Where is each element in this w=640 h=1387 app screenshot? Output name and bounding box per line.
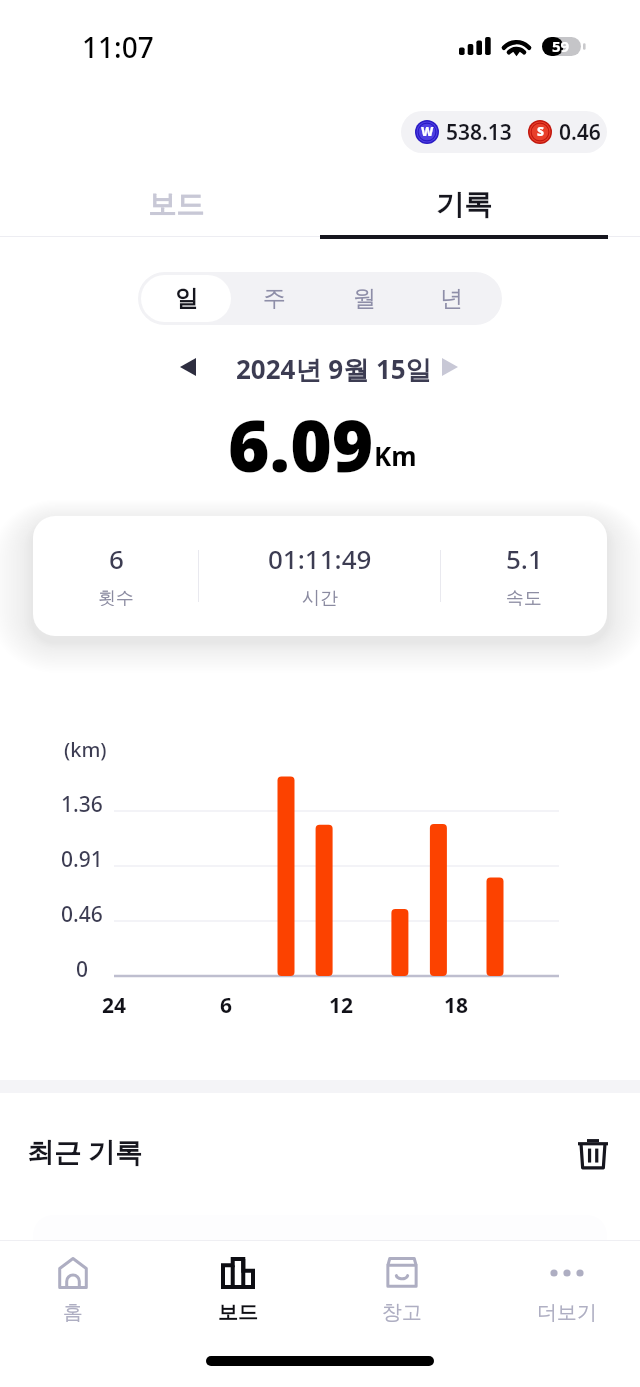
staticText: 5.1 [506, 541, 543, 576]
staticText: 0 [76, 955, 89, 984]
button[interactable]: 보드 [178, 1248, 298, 1338]
staticText: 12 [329, 991, 354, 1020]
staticText: 홈 [63, 1300, 83, 1325]
staticText: 창고 [382, 1300, 422, 1325]
staticText: W [421, 123, 434, 139]
staticText: 월 [353, 284, 376, 313]
button[interactable]: 년 [406, 272, 496, 325]
staticText: 59 [552, 36, 570, 55]
staticText: 년 [440, 284, 463, 313]
staticText: 보드 [218, 1300, 258, 1325]
button[interactable]: W [401, 111, 607, 153]
staticText: 18 [444, 991, 469, 1020]
staticText: 6 [220, 991, 233, 1020]
staticText: 더보기 [537, 1300, 597, 1325]
button[interactable]: 월 [319, 272, 409, 325]
staticText: 538.13 [446, 118, 512, 147]
staticText: 횟수 [98, 587, 134, 610]
staticText: (km) [64, 736, 107, 763]
staticText: Km [374, 438, 417, 473]
button[interactable]: Delete records [567, 1126, 619, 1178]
staticText: 시간 [302, 587, 338, 610]
staticText: 6.09 [228, 396, 374, 493]
staticText: 1.36 [61, 790, 103, 819]
staticText: 0.46 [559, 118, 601, 147]
button[interactable]: Previous day [164, 343, 212, 391]
staticText: 보드 [148, 187, 204, 222]
staticText: 최근 기록 [27, 1133, 143, 1170]
staticText: 01:11:49 [268, 541, 372, 576]
staticText: 주 [263, 284, 286, 313]
button[interactable]: 보드 [32, 172, 320, 236]
button[interactable]: 더보기 [507, 1248, 627, 1338]
button[interactable]: Next day [426, 343, 474, 391]
staticText: 속도 [506, 587, 542, 610]
staticText: S [537, 123, 544, 139]
button[interactable]: 창고 [342, 1248, 462, 1338]
staticText: 일 [175, 284, 198, 313]
button[interactable]: 주 [229, 272, 319, 325]
staticText: 11:07 [82, 28, 154, 66]
staticText: 기록 [436, 187, 492, 222]
staticText: 2024년 9월 15일 [236, 351, 432, 387]
button[interactable]: 홈 [13, 1248, 133, 1338]
button[interactable]: 일 [141, 272, 231, 325]
staticText: 0.91 [61, 845, 103, 874]
staticText: 0.46 [61, 900, 103, 929]
staticText: 6 [109, 541, 124, 576]
staticText: 24 [102, 991, 127, 1020]
button[interactable]: 기록 [320, 172, 608, 236]
